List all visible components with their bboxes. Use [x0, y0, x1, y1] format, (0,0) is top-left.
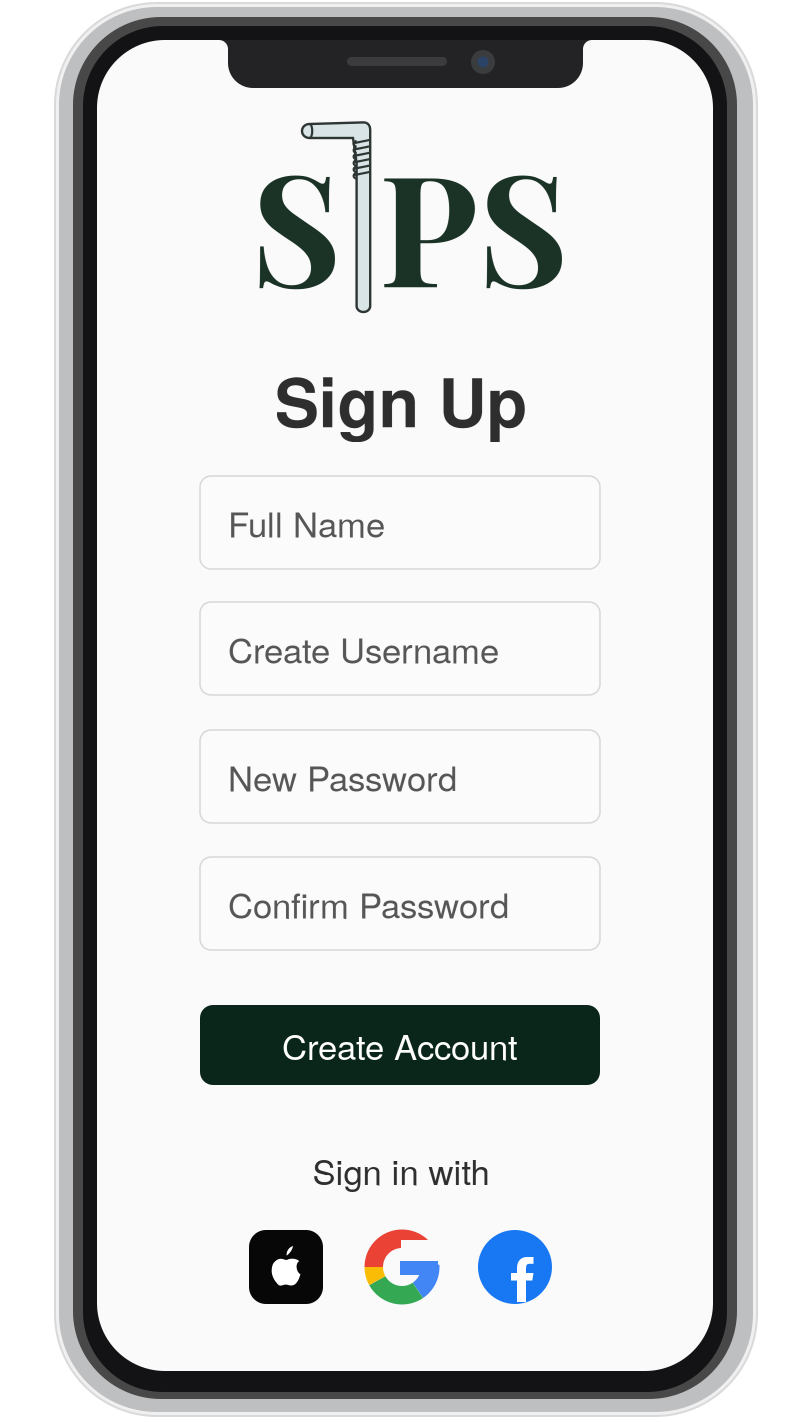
staticText: PS	[379, 120, 568, 326]
staticText: Create Account	[282, 1020, 518, 1070]
staticText: S	[251, 120, 341, 326]
button[interactable]: Create Username	[200, 602, 600, 695]
staticText: Create Username	[228, 624, 499, 673]
staticText: Sign Up	[274, 352, 527, 448]
staticText: Full Name	[228, 498, 385, 547]
button[interactable]: Sign in with Facebook	[478, 1230, 552, 1304]
button[interactable]: New Password	[200, 730, 600, 823]
button[interactable]: Sign in with Apple	[249, 1230, 323, 1304]
button[interactable]: Confirm Password	[200, 857, 600, 950]
staticText: Sign in with	[312, 1145, 489, 1195]
staticText: Confirm Password	[228, 879, 509, 928]
button[interactable]: Create Account	[200, 1005, 600, 1085]
button[interactable]: Full Name	[200, 476, 600, 569]
button[interactable]: Sign in with Google	[365, 1230, 439, 1304]
staticText: New Password	[228, 752, 457, 801]
